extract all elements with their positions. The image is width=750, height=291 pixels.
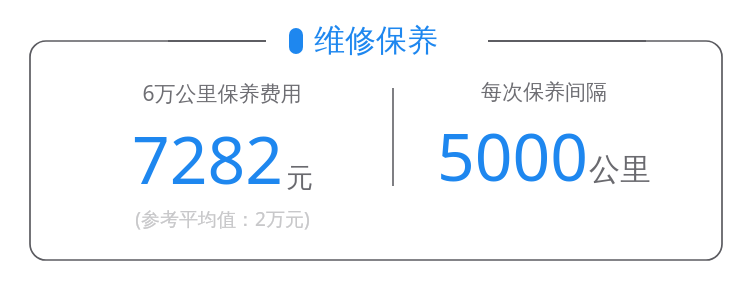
button[interactable]: 分类标记 (289, 21, 438, 60)
staticText: 元 (286, 161, 313, 195)
staticText: 6万公里保养费用 (142, 79, 302, 108)
staticText: 维修保养 (314, 21, 438, 60)
staticText: 每次保养间隔 (481, 79, 607, 105)
staticText: (参考平均值：2万元) (135, 206, 310, 232)
staticText: 7282 (132, 113, 284, 203)
staticText: 5000 (437, 110, 589, 197)
button[interactable]: 每次保养间隔 (404, 79, 684, 197)
other: 分类标记 (289, 28, 303, 54)
button[interactable]: 6万公里保养费用 (82, 79, 362, 237)
staticText: 公里 (589, 150, 651, 189)
